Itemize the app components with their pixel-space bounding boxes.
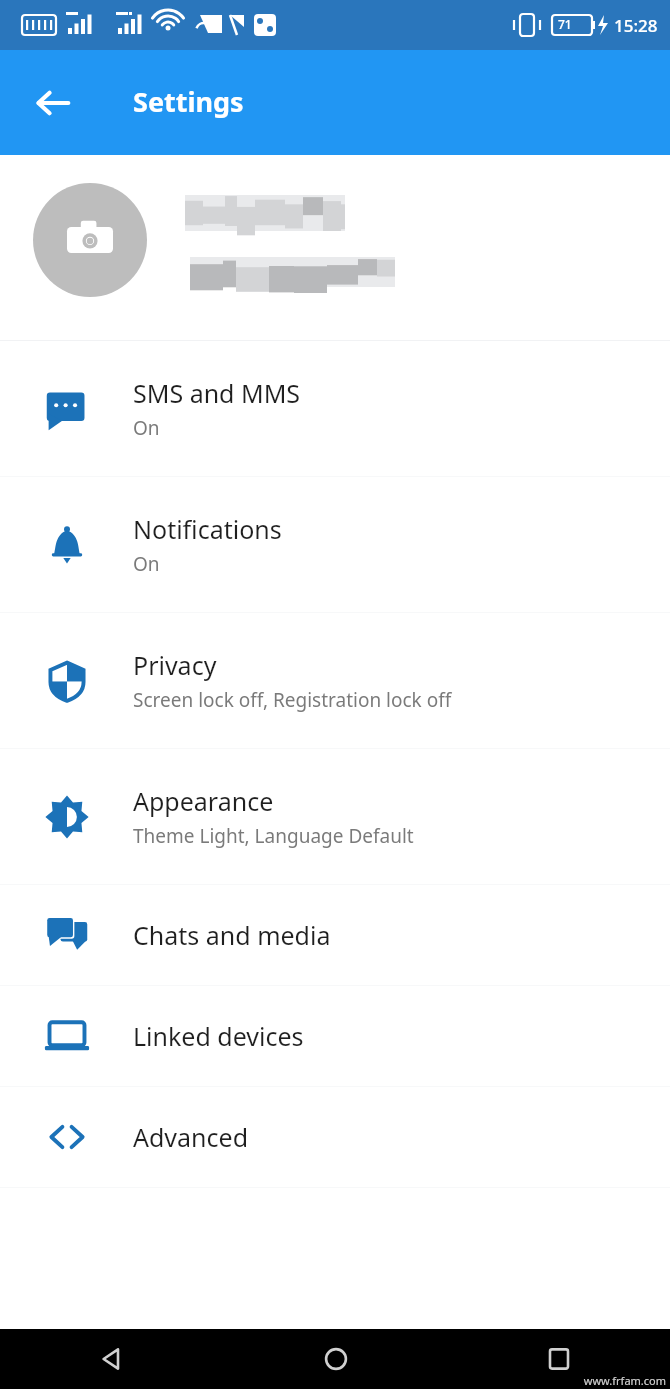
staticText: Appearance <box>133 784 274 818</box>
staticText: Settings <box>133 83 244 120</box>
button[interactable]: Home <box>224 1329 447 1389</box>
staticText: Privacy <box>133 648 217 682</box>
button[interactable]: SMS and MMS <box>0 341 670 476</box>
staticText: On <box>133 415 160 441</box>
staticText: On <box>133 551 160 577</box>
button[interactable]: Appearance <box>0 749 670 884</box>
staticText: Chats and media <box>133 918 331 952</box>
button[interactable]: Notifications <box>0 477 670 612</box>
staticText: Advanced <box>133 1120 249 1154</box>
button[interactable]: Back <box>9 59 97 147</box>
staticText: Screen lock off, Registration lock off <box>133 687 452 713</box>
staticText: 71 <box>558 16 572 32</box>
staticText: Linked devices <box>133 1019 304 1053</box>
button[interactable]: Recent apps <box>447 1329 670 1389</box>
button[interactable]: Privacy <box>0 613 670 748</box>
staticText: Notifications <box>133 512 282 546</box>
staticText: www.frfam.com <box>583 1373 666 1388</box>
button[interactable]: Chats and media <box>0 885 670 985</box>
button[interactable]: Advanced <box>0 1087 670 1187</box>
button[interactable]: Linked devices <box>0 986 670 1086</box>
staticText: SMS and MMS <box>133 376 301 410</box>
button[interactable] <box>0 155 670 340</box>
button[interactable]: Back <box>0 1329 224 1389</box>
staticText: 15:28 <box>614 14 658 37</box>
staticText: Theme Light, Language Default <box>133 823 414 849</box>
